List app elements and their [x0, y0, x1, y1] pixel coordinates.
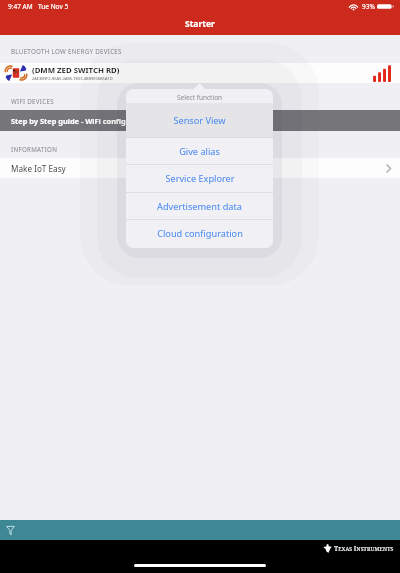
- button[interactable]: (DMM ZED SWITCH RD): [0, 63, 400, 83]
- button[interactable]: Cloud configuration: [126, 220, 273, 247]
- staticText: 9:47 AM: [8, 2, 33, 11]
- button[interactable]: Advertisement data: [126, 193, 273, 219]
- staticText: Give alias: [179, 145, 220, 158]
- staticText: INFORMATION: [11, 145, 58, 153]
- staticText: TEXAS INSTRUMENTS: [334, 544, 394, 553]
- staticText: 93%: [362, 2, 375, 11]
- staticText: Tue Nov 5: [38, 2, 69, 11]
- staticText: BLUETOOTH LOW ENERGY DEVICES: [11, 47, 122, 55]
- staticText: (DMM ZED SWITCH RD): [32, 65, 120, 76]
- button[interactable]: Service Explorer: [126, 165, 273, 192]
- staticText: 2AE3B9F2-86A5-4A86-7803-4B89E06B5A1D: [32, 76, 113, 81]
- staticText: Make IoT Easy: [11, 163, 66, 174]
- button[interactable]: Sensor View: [126, 103, 273, 137]
- staticText: Step by Step guide - WiFi configuration: [11, 116, 153, 126]
- staticText: Advertisement data: [157, 200, 242, 213]
- staticText: Sensor View: [173, 114, 226, 127]
- staticText: WIFI DEVICES: [11, 97, 54, 105]
- staticText: Cloud configuration: [157, 227, 243, 240]
- button[interactable]: Step by Step guide - WiFi configuration: [0, 110, 400, 131]
- staticText: Select function: [177, 93, 223, 102]
- button[interactable]: Give alias: [126, 138, 273, 164]
- staticText: Service Explorer: [165, 172, 235, 185]
- button[interactable]: Filter: [0, 520, 400, 540]
- staticText: Starter: [185, 18, 215, 30]
- button[interactable]: Make IoT Easy: [0, 158, 400, 178]
